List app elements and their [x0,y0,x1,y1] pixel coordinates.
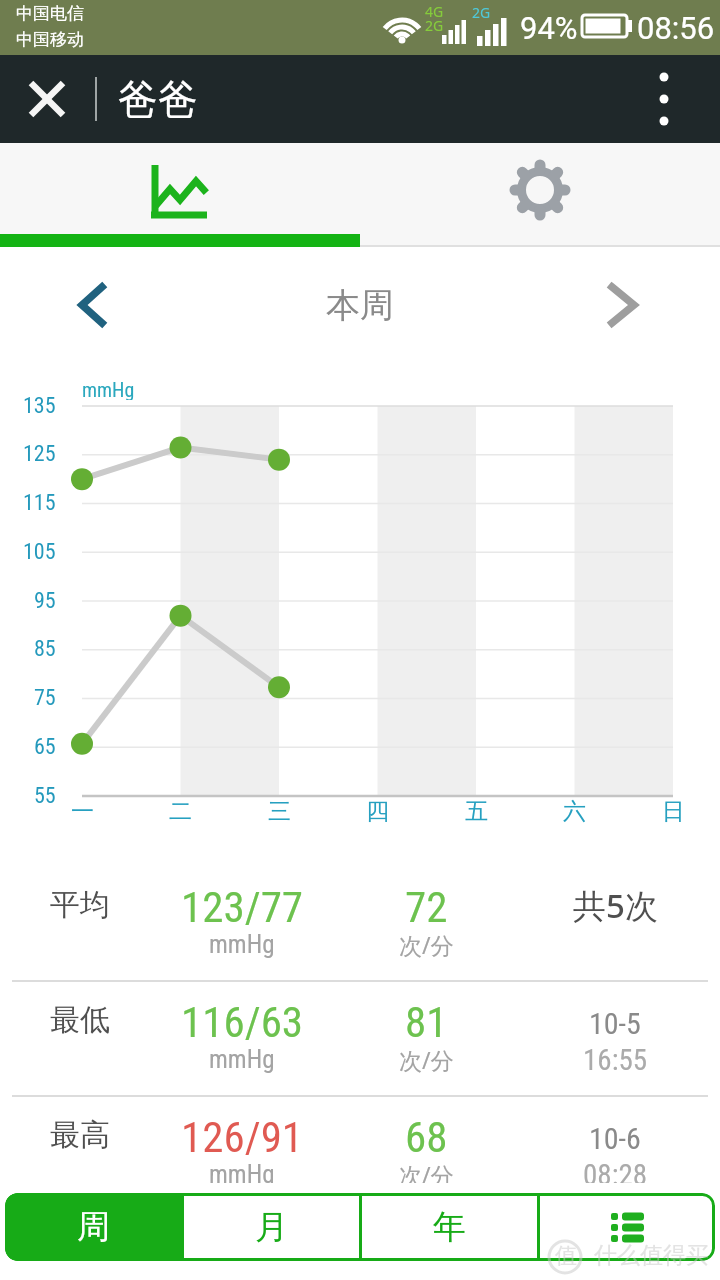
button[interactable]: 最低 [0,981,720,1096]
staticText: 值 [555,1242,577,1270]
button[interactable] [540,1193,715,1261]
staticText: 周 [77,1206,110,1248]
button[interactable] [0,143,360,247]
staticText: 4G [425,2,444,17]
button[interactable] [55,270,125,340]
staticText: 65 [34,734,56,760]
staticText: 123/77 [181,882,304,928]
staticText: 116/63 [181,997,304,1043]
staticText: 最低 [50,1001,110,1039]
staticText: 共5次 [573,883,658,927]
staticText: 115 [23,490,56,516]
button[interactable] [360,143,720,247]
staticText: 75 [34,685,56,711]
staticText: 72 [405,882,448,928]
staticText: 本周 [326,284,394,327]
staticText: 次/分 [399,929,454,959]
staticText: 中国电信 [16,3,84,24]
staticText: 年 [433,1206,466,1248]
staticText: 81 [405,997,448,1043]
staticText: 中国移动 [16,29,84,50]
staticText: 105 [23,539,56,565]
staticText: 94% [520,10,578,46]
button[interactable]: 周 [5,1193,181,1261]
staticText: 10-5 [589,1006,641,1041]
button[interactable] [595,270,665,340]
staticText: mmHg [82,378,135,400]
staticText: 2G [472,3,491,18]
staticText: 日 [662,797,685,826]
staticText: 四 [366,797,389,826]
staticText: 三 [268,797,291,826]
staticText: 次/分 [399,1159,454,1189]
staticText: 平均 [50,886,110,924]
button[interactable]: 平均 [0,866,720,981]
staticText: 85 [34,636,56,662]
staticText: 135 [23,393,56,419]
staticText: 16:55 [583,1043,648,1077]
staticText: 2G [425,16,444,31]
staticText: 什么值得买 [594,1241,709,1269]
staticText: 55 [34,783,56,809]
staticText: mmHg [209,1045,275,1074]
button[interactable] [0,55,84,143]
button[interactable]: 年 [362,1193,537,1261]
staticText: 95 [34,588,56,614]
staticText: 二 [169,797,192,826]
staticText: 08:28 [583,1158,648,1192]
staticText: 125 [23,441,56,467]
staticText: 68 [405,1112,448,1158]
staticText: 五 [465,797,488,826]
staticText: 最高 [50,1116,110,1154]
staticText: mmHg [209,1160,275,1189]
staticText: 月 [255,1206,288,1248]
button[interactable]: 月 [184,1193,359,1261]
staticText: 10-6 [589,1121,641,1156]
staticText: 六 [563,797,586,826]
staticText: 爸爸 [118,74,198,124]
staticText: mmHg [209,930,275,959]
staticText: 08:56 [637,10,715,46]
staticText: 一 [71,797,94,826]
button[interactable]: 最高 [0,1096,720,1211]
button[interactable] [630,55,700,143]
staticText: 次/分 [399,1044,454,1074]
staticText: 126/91 [181,1112,304,1158]
